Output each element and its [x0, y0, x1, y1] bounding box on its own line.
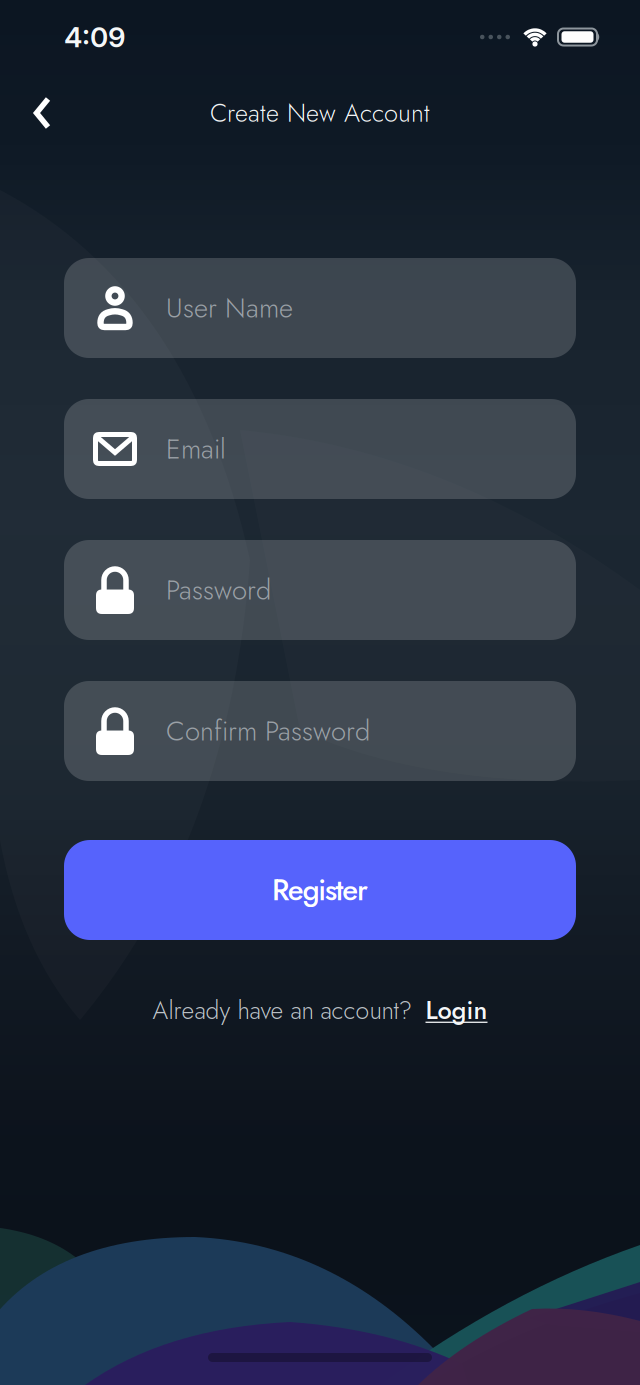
button[interactable]: Confirm Password	[64, 681, 576, 781]
staticText: Register	[272, 869, 368, 911]
button[interactable]: User Name	[64, 258, 576, 358]
button[interactable]: Password	[64, 540, 576, 640]
button[interactable]: Email	[64, 399, 576, 499]
staticText: Email	[166, 429, 226, 469]
button[interactable]: Login	[425, 992, 487, 1029]
staticText: Create New Account	[210, 95, 430, 131]
staticText: User Name	[166, 288, 293, 328]
staticText: 4:09	[64, 20, 126, 54]
button[interactable]: Register	[64, 840, 576, 940]
staticText: Already have an account?	[152, 992, 412, 1028]
button[interactable]	[0, 96, 72, 130]
staticText: Confirm Password	[166, 711, 370, 751]
staticText: Login	[425, 992, 487, 1029]
staticText: Password	[166, 570, 271, 610]
